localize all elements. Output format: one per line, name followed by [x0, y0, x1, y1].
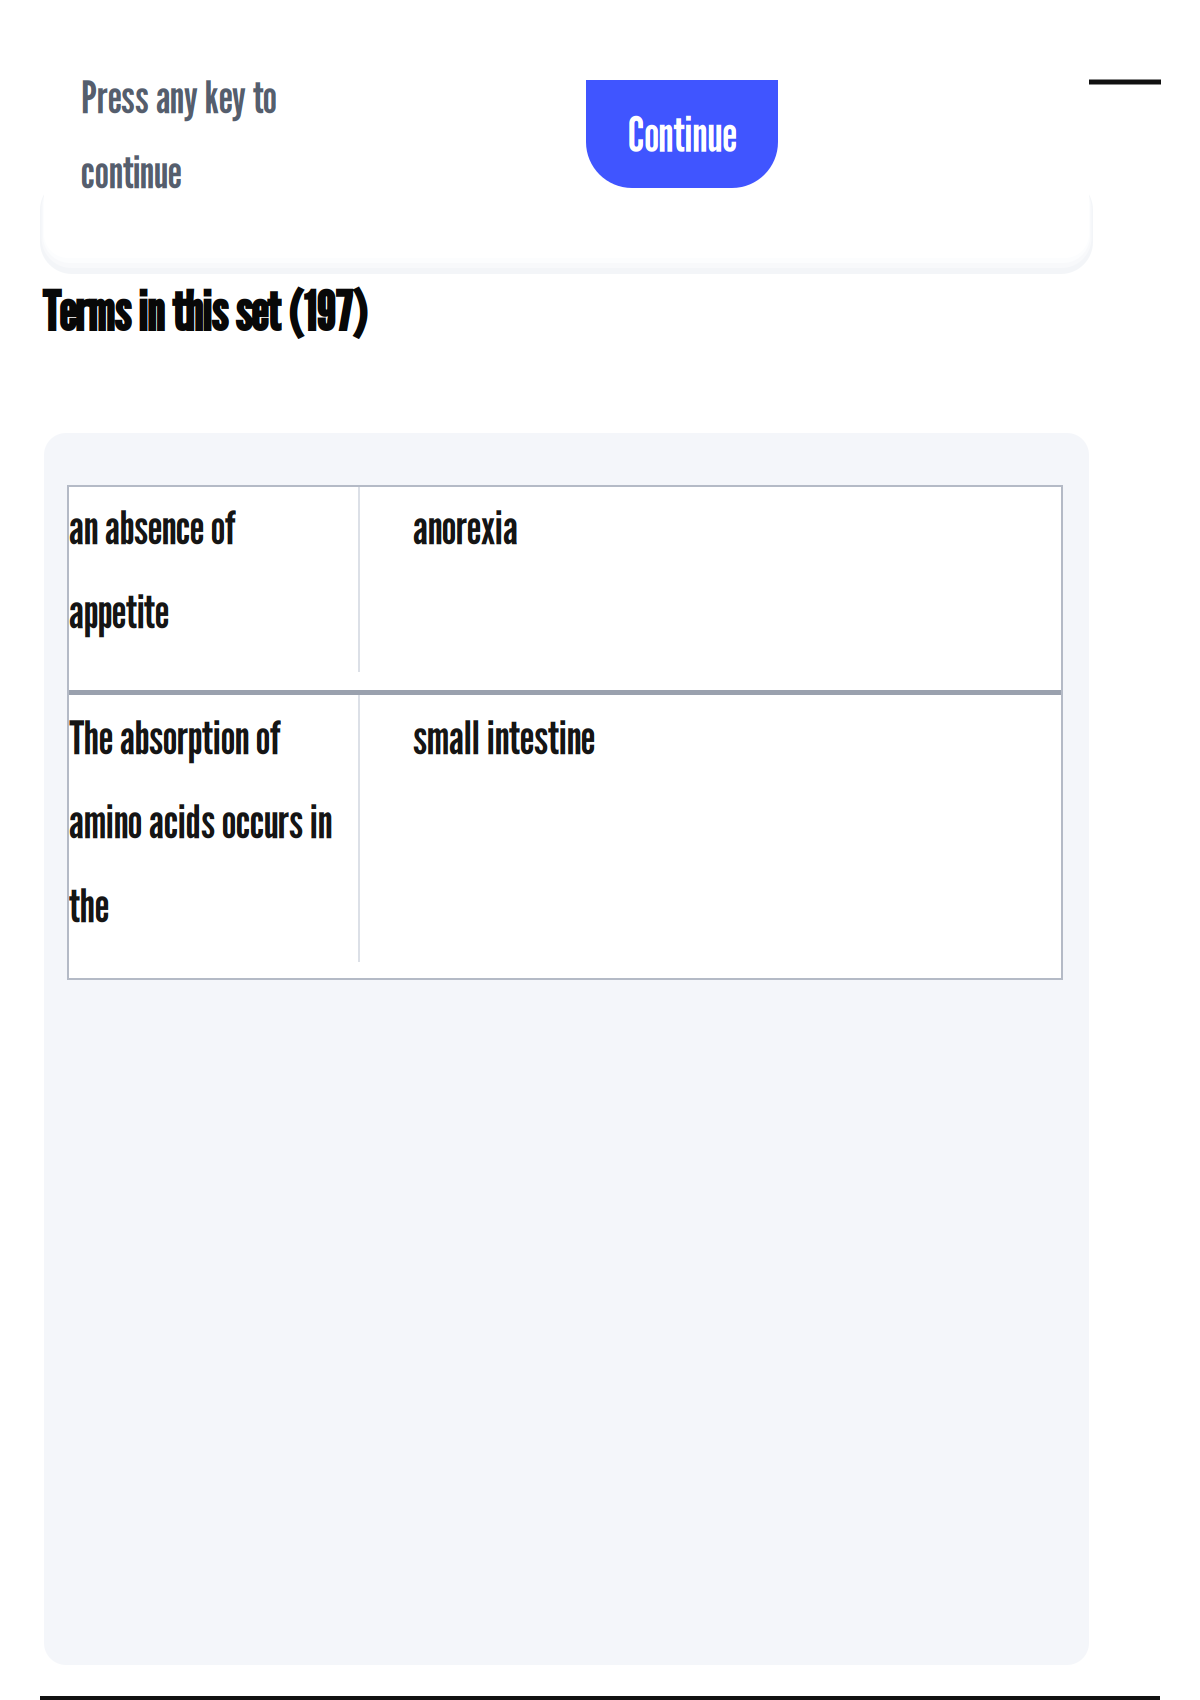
staticText: continue: [81, 144, 182, 199]
staticText: Terms in this set (197): [42, 278, 367, 344]
staticText: Continue: [627, 105, 736, 163]
staticText: small intestine: [413, 709, 595, 765]
staticText: amino acids occurs in: [69, 793, 332, 849]
staticText: The absorption of: [69, 709, 281, 765]
staticText: an absence of: [69, 499, 236, 555]
staticText: the: [69, 877, 109, 933]
button[interactable]: Continue: [586, 80, 778, 188]
staticText: anorexia: [413, 499, 518, 555]
staticText: appetite: [69, 583, 169, 639]
staticText: Press any key to: [81, 69, 277, 124]
